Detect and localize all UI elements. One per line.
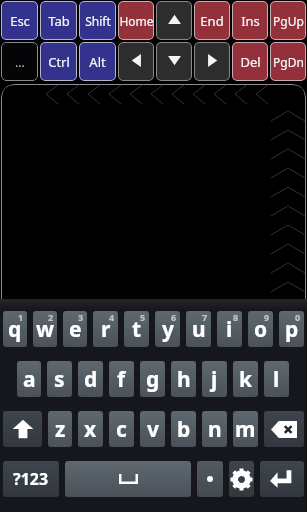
button[interactable]: k bbox=[233, 361, 258, 397]
staticText: c bbox=[116, 415, 127, 444]
staticText: o bbox=[254, 315, 268, 344]
button[interactable]: Period bbox=[197, 461, 223, 497]
staticText: l bbox=[273, 365, 280, 394]
button[interactable]: More keys bbox=[1, 42, 38, 81]
staticText: Shift bbox=[85, 13, 111, 29]
staticText: u bbox=[192, 315, 206, 344]
button[interactable]: PgUp bbox=[270, 1, 306, 40]
staticText: PgUp bbox=[273, 13, 304, 29]
staticText: Ins bbox=[241, 12, 260, 30]
button[interactable]: c bbox=[109, 411, 134, 447]
staticText: Alt bbox=[89, 53, 106, 71]
staticText: k bbox=[239, 365, 253, 394]
staticText: i bbox=[226, 315, 233, 344]
staticText: d bbox=[84, 365, 98, 394]
staticText: q bbox=[8, 315, 22, 344]
button[interactable]: t bbox=[124, 311, 149, 347]
button[interactable]: Space bbox=[65, 461, 191, 497]
staticText: e bbox=[69, 315, 82, 344]
staticText: t bbox=[132, 315, 142, 344]
staticText: y bbox=[162, 315, 174, 344]
staticText: 9 bbox=[264, 311, 270, 323]
button[interactable]: Alt bbox=[79, 42, 116, 81]
staticText: Tab bbox=[48, 12, 70, 30]
button[interactable]: Right bbox=[194, 42, 230, 81]
staticText: 5 bbox=[140, 311, 146, 323]
staticText: s bbox=[54, 365, 65, 394]
staticText: h bbox=[177, 365, 191, 394]
button[interactable]: d bbox=[78, 361, 103, 397]
staticText: 6 bbox=[171, 311, 177, 323]
button[interactable]: Settings bbox=[229, 461, 254, 497]
button[interactable]: y bbox=[155, 311, 180, 347]
button[interactable]: ?123 bbox=[3, 461, 59, 497]
button[interactable]: Ins bbox=[232, 1, 268, 40]
button[interactable]: v bbox=[140, 411, 165, 447]
button[interactable]: Down bbox=[156, 42, 192, 81]
button[interactable]: u bbox=[186, 311, 211, 347]
staticText: a bbox=[23, 365, 36, 394]
button[interactable]: Shift bbox=[3, 411, 42, 447]
button[interactable]: w bbox=[33, 311, 57, 347]
button[interactable]: Left bbox=[118, 42, 154, 81]
button[interactable]: Up bbox=[156, 1, 192, 40]
staticText: j bbox=[211, 365, 218, 394]
staticText: Del bbox=[240, 53, 261, 71]
staticText: ?123 bbox=[13, 468, 49, 490]
button[interactable]: PgDn bbox=[270, 42, 306, 81]
button[interactable]: n bbox=[202, 411, 227, 447]
button[interactable]: x bbox=[78, 411, 103, 447]
button[interactable]: h bbox=[171, 361, 196, 397]
staticText: m bbox=[235, 415, 256, 444]
staticText: 0 bbox=[295, 311, 301, 323]
button[interactable]: r bbox=[93, 311, 118, 347]
staticText: ... bbox=[15, 54, 25, 70]
staticText: 4 bbox=[109, 311, 115, 323]
button[interactable]: m bbox=[233, 411, 258, 447]
button[interactable]: Home bbox=[118, 1, 154, 40]
button[interactable]: a bbox=[17, 361, 41, 397]
staticText: w bbox=[36, 315, 54, 344]
staticText: v bbox=[147, 415, 159, 444]
button[interactable]: Backspace bbox=[264, 411, 304, 447]
button[interactable]: j bbox=[202, 361, 227, 397]
staticText: 3 bbox=[78, 311, 84, 323]
button[interactable]: Esc bbox=[1, 1, 38, 40]
button[interactable]: z bbox=[48, 411, 72, 447]
button[interactable]: Del bbox=[232, 42, 268, 81]
button[interactable]: Shift bbox=[79, 1, 116, 40]
staticText: g bbox=[146, 365, 160, 394]
button[interactable]: Tab bbox=[40, 1, 77, 40]
button[interactable]: Enter bbox=[260, 461, 304, 497]
staticText: b bbox=[177, 415, 191, 444]
button[interactable]: b bbox=[171, 411, 196, 447]
staticText: Home bbox=[119, 13, 154, 29]
staticText: 2 bbox=[48, 311, 54, 323]
staticText: n bbox=[208, 415, 222, 444]
staticText: x bbox=[84, 415, 97, 444]
button[interactable]: Terminal output bbox=[1, 84, 306, 299]
staticText: r bbox=[101, 315, 111, 344]
button[interactable]: q bbox=[3, 311, 27, 347]
staticText: 8 bbox=[233, 311, 239, 323]
button[interactable]: Ctrl bbox=[40, 42, 77, 81]
staticText: PgDn bbox=[273, 54, 304, 70]
button[interactable]: g bbox=[140, 361, 165, 397]
button[interactable]: e bbox=[63, 311, 87, 347]
button[interactable]: f bbox=[109, 361, 134, 397]
staticText: End bbox=[200, 12, 224, 30]
staticText: Esc bbox=[10, 12, 30, 30]
button[interactable]: i bbox=[217, 311, 242, 347]
button[interactable]: s bbox=[47, 361, 72, 397]
button[interactable]: End bbox=[194, 1, 230, 40]
staticText: p bbox=[285, 315, 299, 344]
button[interactable]: o bbox=[248, 311, 273, 347]
staticText: 1 bbox=[18, 311, 24, 323]
staticText: z bbox=[55, 415, 66, 444]
staticText: Ctrl bbox=[48, 53, 70, 71]
button[interactable]: p bbox=[279, 311, 304, 347]
staticText: 7 bbox=[202, 311, 208, 323]
button[interactable]: l bbox=[264, 361, 289, 397]
staticText: f bbox=[117, 365, 126, 394]
